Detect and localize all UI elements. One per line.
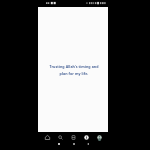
button[interactable]: Bookmarks xyxy=(68,132,79,141)
button[interactable]: Back xyxy=(85,141,90,146)
button[interactable]: Search xyxy=(55,132,66,141)
button[interactable]: Recents xyxy=(56,141,61,146)
button[interactable]: Info xyxy=(81,132,92,141)
staticText: Trusting Allah's timing and plan for my … xyxy=(49,64,99,76)
button[interactable]: Home xyxy=(71,141,76,146)
button[interactable]: Profile xyxy=(94,132,105,141)
button[interactable]: Home xyxy=(42,132,53,141)
